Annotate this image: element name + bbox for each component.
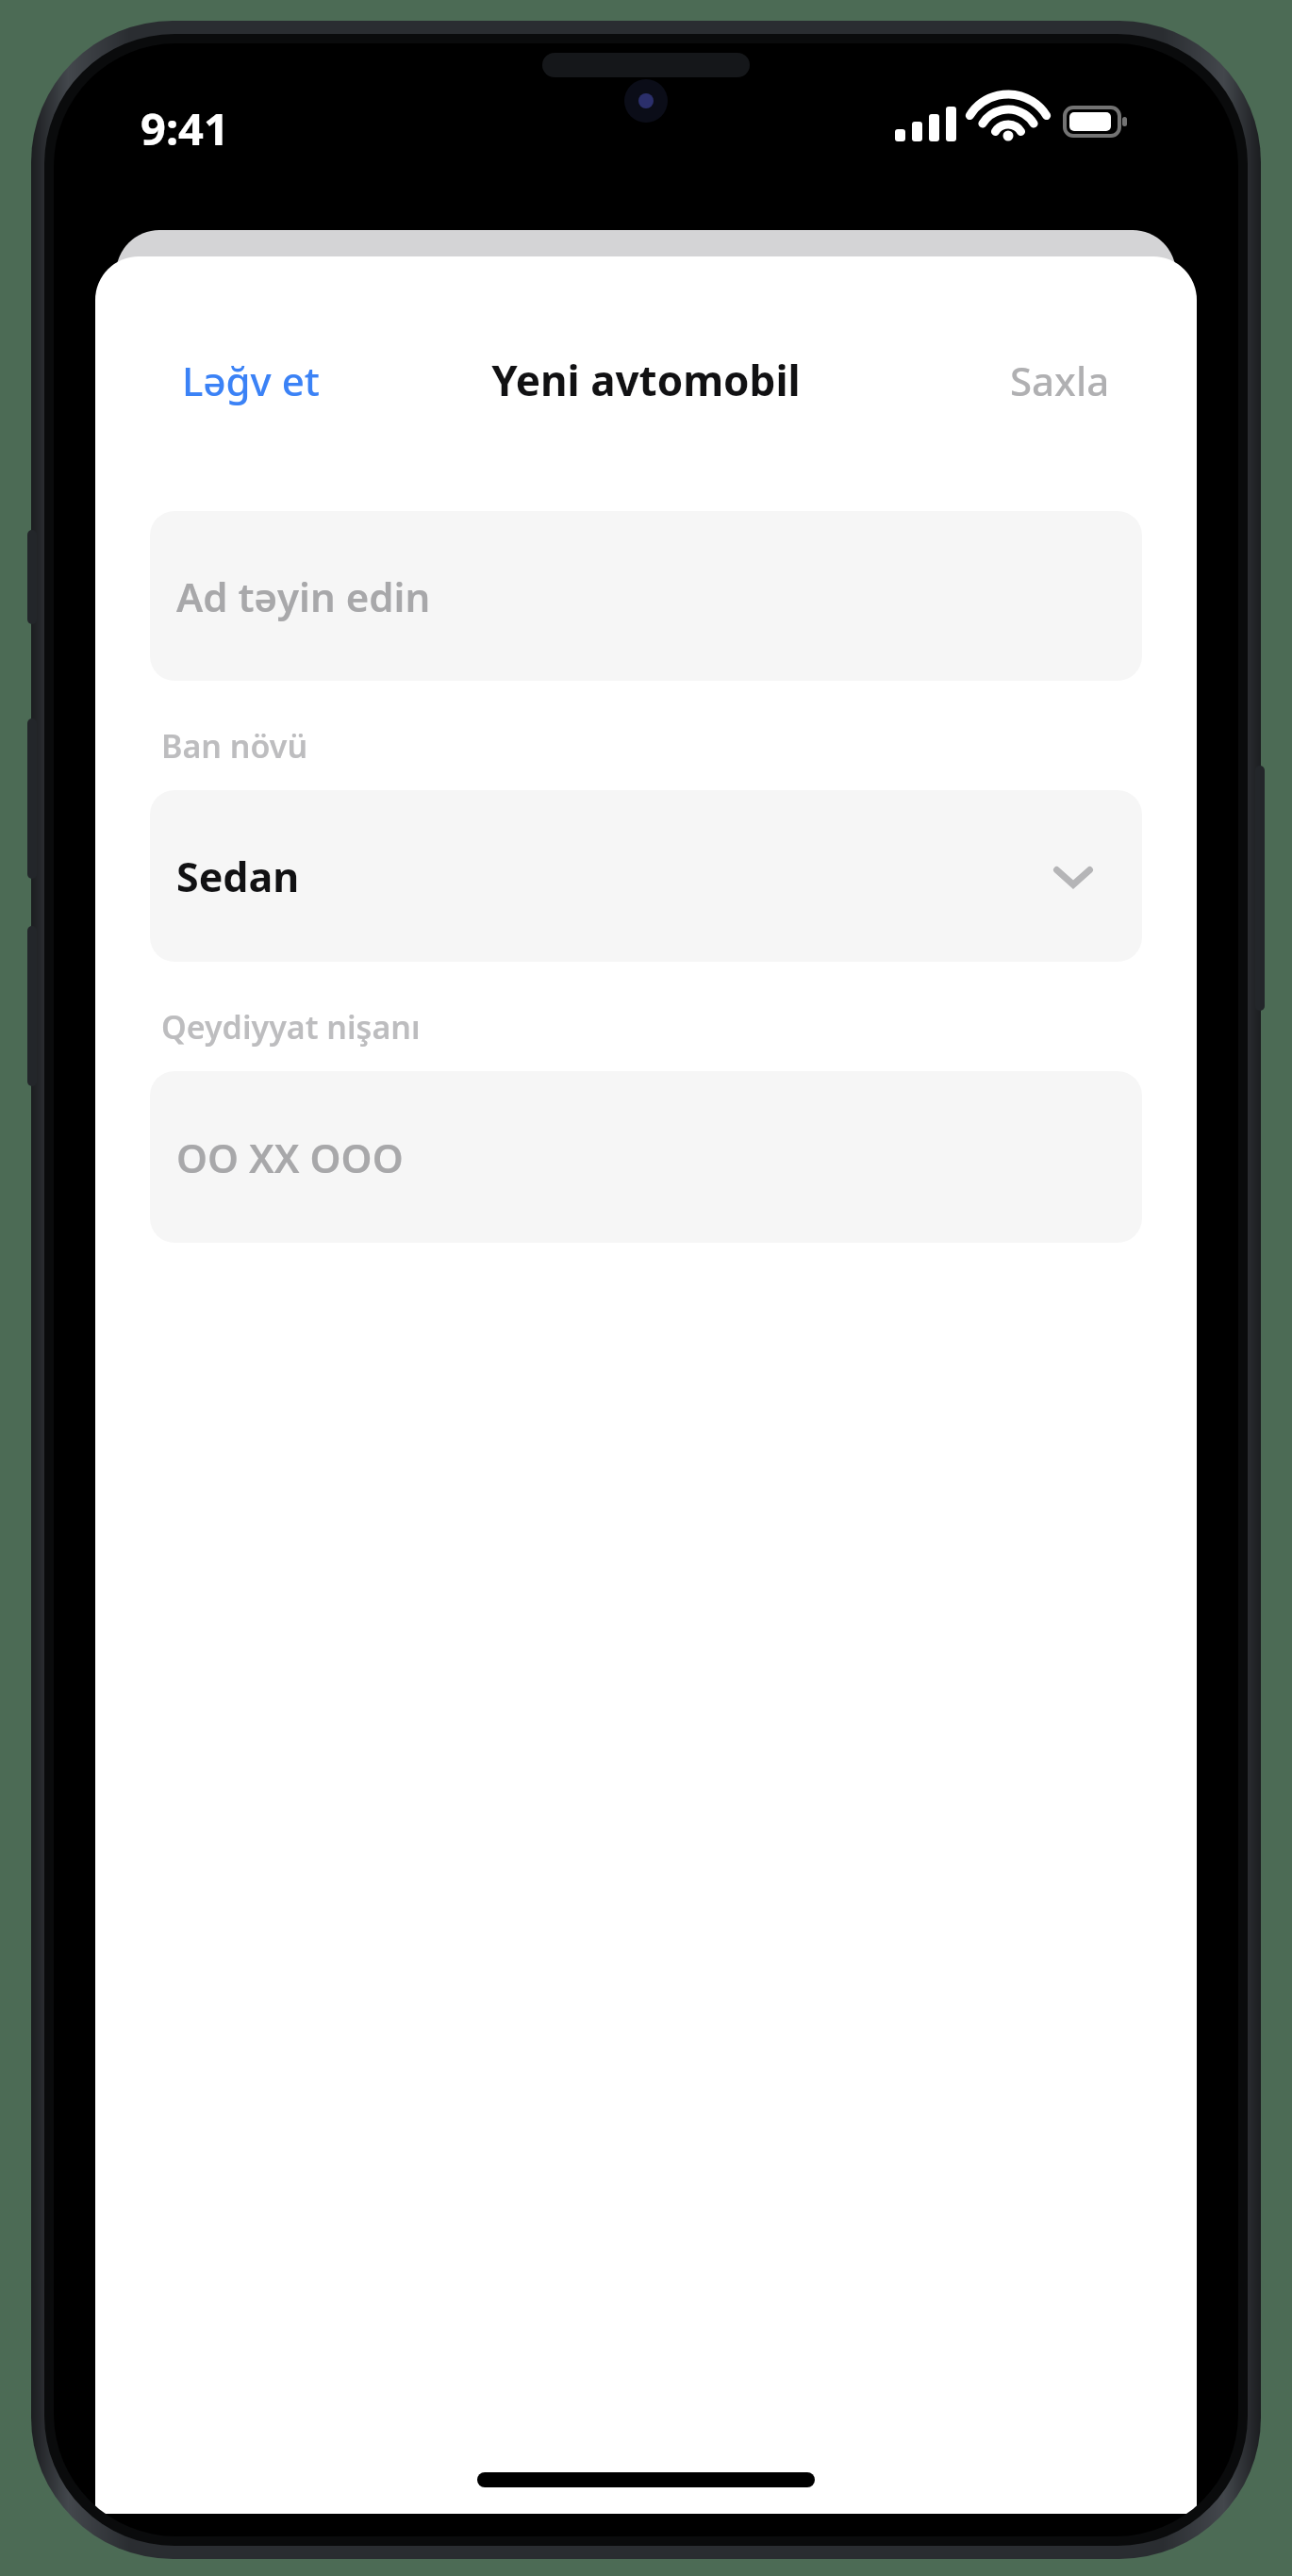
- button[interactable]: Ləğv et: [173, 346, 329, 415]
- staticText: OO XX OOO: [176, 1131, 404, 1184]
- other: Expand body type: [1052, 854, 1095, 898]
- button[interactable]: Ad təyin edin: [150, 511, 1142, 681]
- staticText: Sedan: [176, 849, 300, 904]
- staticText: Qeydiyyat nişanı: [161, 1005, 421, 1049]
- staticText: Ləğv et: [182, 354, 320, 407]
- staticText: 9:41: [141, 98, 229, 158]
- staticText: Ad təyin edin: [176, 570, 431, 623]
- button[interactable]: Saxla: [1001, 346, 1119, 415]
- button[interactable]: OO XX OOO: [150, 1071, 1142, 1243]
- staticText: Yeni avtomobil: [491, 352, 801, 408]
- staticText: Saxla: [1010, 354, 1110, 407]
- button[interactable]: Sedan: [150, 790, 1142, 962]
- staticText: Ban növü: [161, 724, 308, 768]
